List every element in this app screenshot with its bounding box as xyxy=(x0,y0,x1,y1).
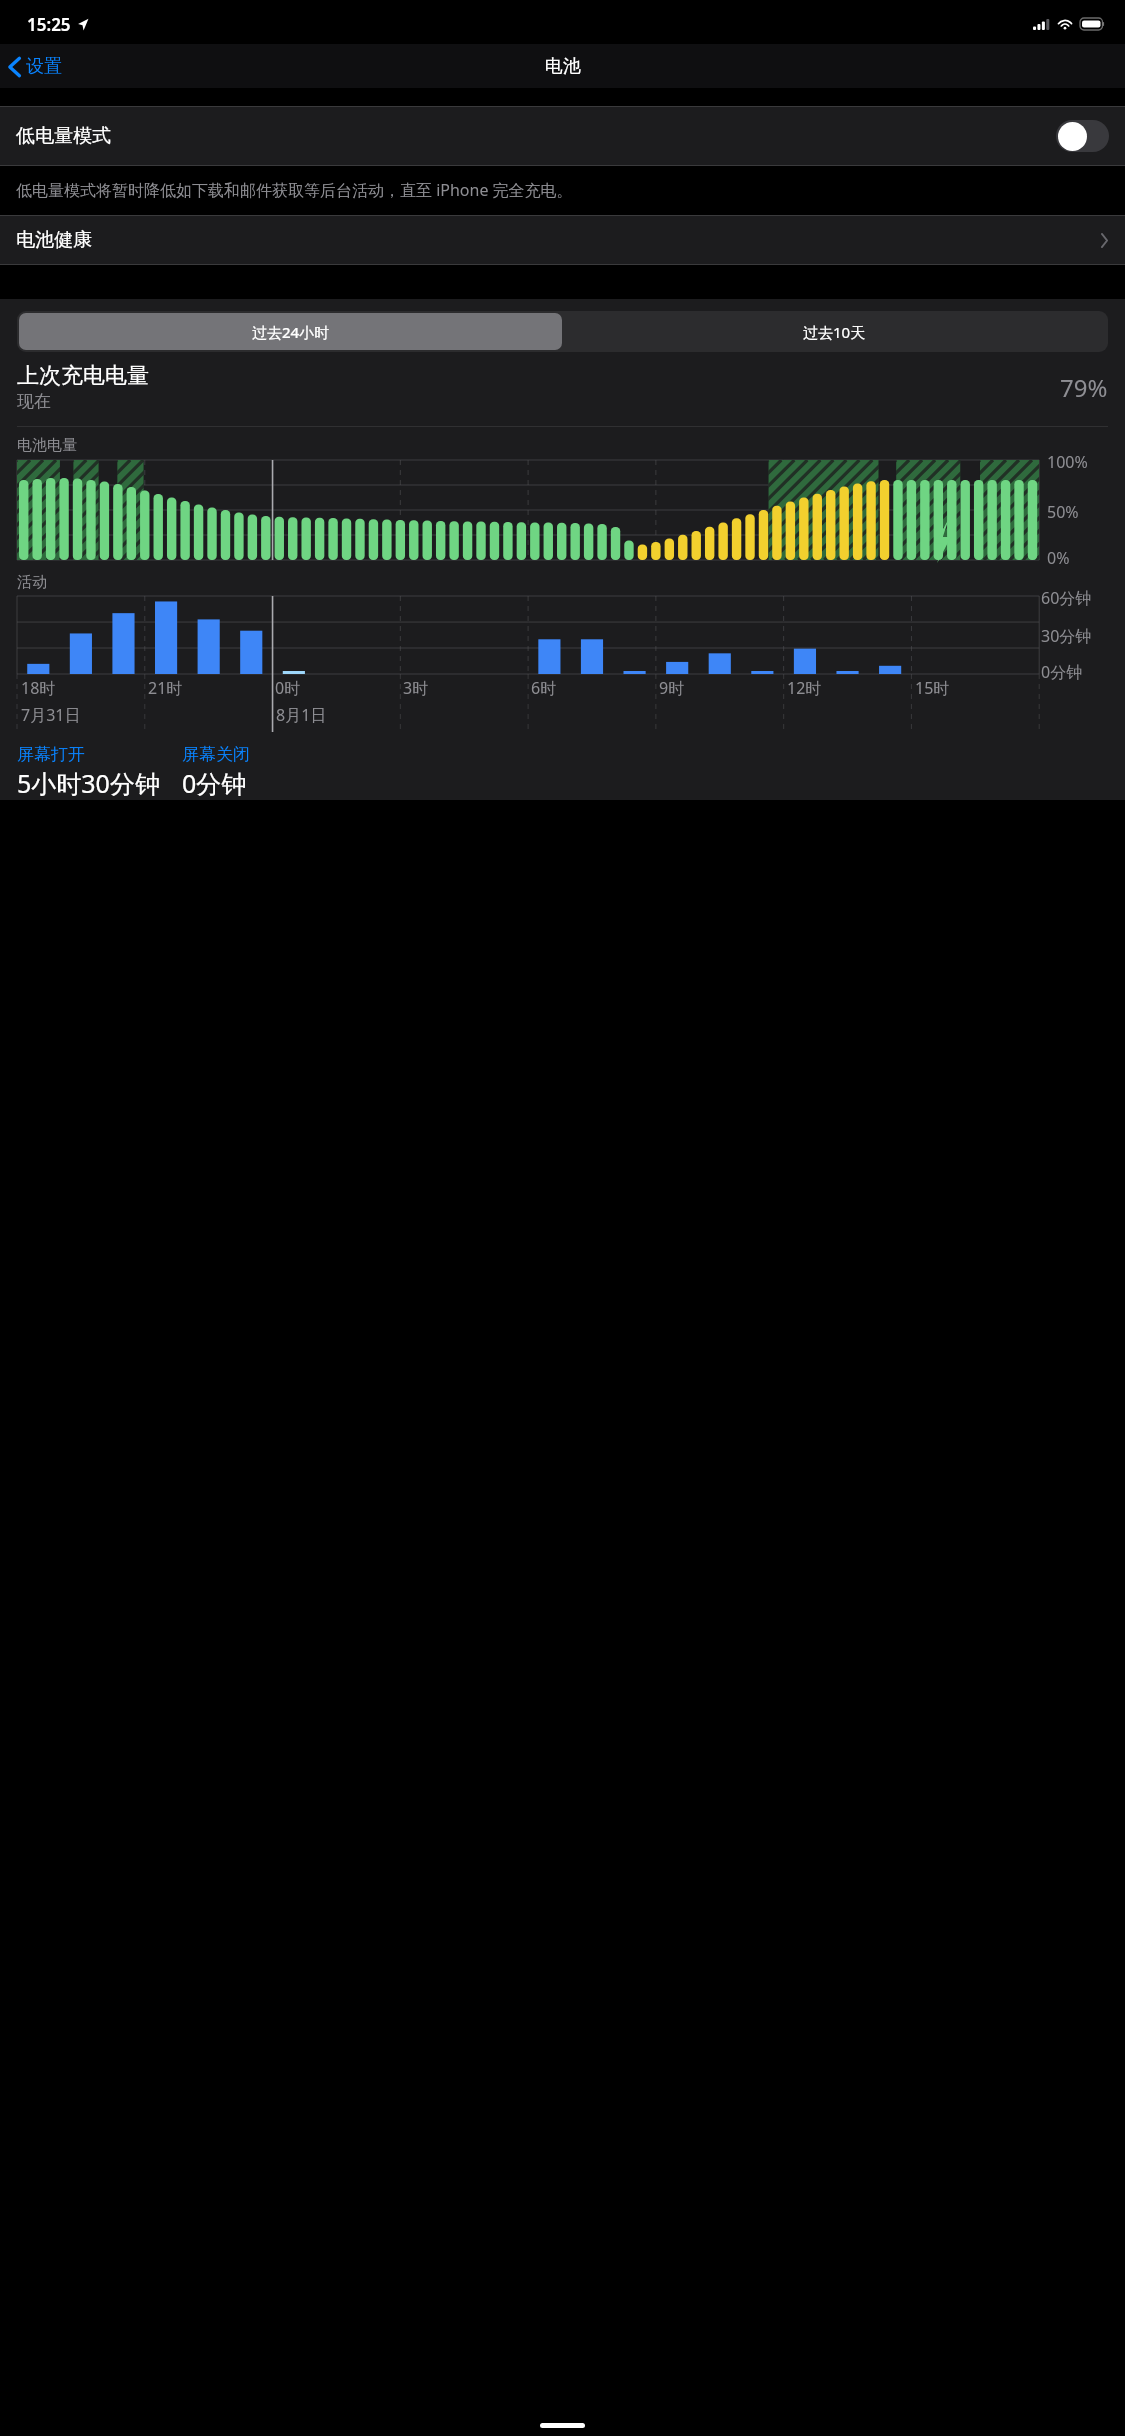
staticText: 低电量模式将暂时降低如下载和邮件获取等后台活动，直至 iPhone 完全充电。 xyxy=(16,179,573,201)
button[interactable]: 低电量模式 xyxy=(0,107,1125,165)
staticText: 过去10天 xyxy=(803,322,866,342)
staticText: 电池电量 xyxy=(17,436,77,455)
staticText: 50% xyxy=(1047,501,1079,523)
button[interactable]: 电池健康 xyxy=(0,216,1125,264)
staticText: 低电量模式 xyxy=(16,124,111,148)
staticText: 0分钟 xyxy=(1041,661,1083,683)
staticText: 屏幕打开 xyxy=(17,744,85,765)
button[interactable]: 低电量模式开关 xyxy=(1056,120,1109,152)
staticText: 设置 xyxy=(26,55,62,78)
staticText: 9时 xyxy=(659,677,685,699)
staticText: 15:25 xyxy=(27,13,71,36)
staticText: 0% xyxy=(1047,547,1070,569)
button[interactable]: 设置 xyxy=(0,51,72,82)
button[interactable]: 过去24小时 xyxy=(19,313,562,350)
staticText: 电池 xyxy=(545,55,581,78)
staticText: 21时 xyxy=(148,677,183,699)
staticText: 8月1日 xyxy=(276,704,327,726)
staticText: 3时 xyxy=(403,677,429,699)
staticText: 79% xyxy=(1060,371,1108,404)
staticText: 30分钟 xyxy=(1041,625,1092,647)
staticText: 5小时30分钟 xyxy=(17,766,160,800)
staticText: 6时 xyxy=(531,677,557,699)
staticText: 60分钟 xyxy=(1041,587,1092,609)
button[interactable]: 过去10天 xyxy=(562,313,1106,350)
staticText: 电池健康 xyxy=(16,228,92,252)
staticText: 7月31日 xyxy=(21,704,81,726)
staticText: 100% xyxy=(1047,451,1088,473)
staticText: 15时 xyxy=(915,677,950,699)
staticText: 现在 xyxy=(17,391,51,412)
staticText: 0时 xyxy=(275,677,301,699)
staticText: 屏幕关闭 xyxy=(182,744,250,765)
staticText: 活动 xyxy=(17,573,47,592)
staticText: 12时 xyxy=(787,677,822,699)
staticText: 18时 xyxy=(21,677,56,699)
staticText: 0分钟 xyxy=(182,766,247,800)
staticText: 上次充电电量 xyxy=(17,362,149,390)
staticText: 过去24小时 xyxy=(252,322,330,342)
